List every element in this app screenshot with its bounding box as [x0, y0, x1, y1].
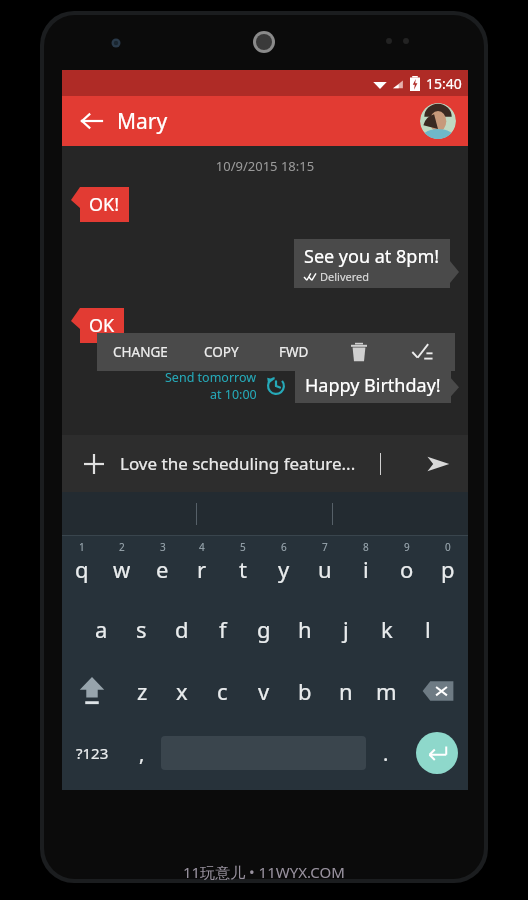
button[interactable]: 2 — [102, 536, 142, 598]
button[interactable]: Select all — [389, 333, 455, 371]
button[interactable]: ?123 — [62, 722, 122, 784]
staticText: z — [137, 676, 148, 706]
staticText: 5 — [240, 540, 246, 554]
button[interactable]: . — [366, 722, 405, 784]
button[interactable]: f — [202, 598, 243, 660]
button[interactable]: FWD — [258, 333, 329, 371]
staticText: 9 — [404, 540, 410, 554]
staticText: p — [441, 554, 455, 584]
button[interactable]: OK — [80, 308, 124, 343]
button[interactable]: Backspace — [407, 660, 468, 722]
button[interactable]: 7 — [304, 536, 345, 598]
staticText: h — [298, 614, 312, 644]
staticText: r — [197, 554, 207, 584]
button[interactable]: Happy Birthday! — [295, 368, 451, 403]
staticText: s — [136, 614, 147, 644]
staticText: 2 — [119, 540, 125, 554]
staticText: at 10:00 — [210, 386, 257, 403]
staticText: j — [343, 614, 349, 644]
button[interactable]: Scheduled — [264, 374, 288, 398]
button[interactable]: See you at 8pm! — [294, 239, 450, 288]
staticText: w — [113, 554, 131, 584]
button[interactable]: j — [325, 598, 366, 660]
button[interactable]: s — [121, 598, 161, 660]
staticText: 8 — [363, 540, 369, 554]
button[interactable]: Enter — [405, 722, 468, 784]
staticText: l — [425, 614, 431, 644]
staticText: COPY — [204, 343, 239, 361]
staticText: k — [381, 614, 393, 644]
button[interactable]: g — [243, 598, 284, 660]
staticText: 10/9/2015 18:15 — [62, 157, 468, 175]
staticText: i — [363, 554, 369, 584]
staticText: Love the scheduling feature... — [120, 452, 356, 475]
button[interactable]: Attach — [78, 448, 110, 480]
staticText: FWD — [279, 343, 309, 361]
staticText: e — [156, 554, 169, 584]
button[interactable]: a — [81, 598, 121, 660]
staticText: b — [298, 676, 312, 706]
staticText: ?123 — [76, 743, 109, 763]
button[interactable]: CHANGE — [97, 333, 184, 371]
staticText: o — [400, 554, 414, 584]
button[interactable]: Contact photo — [420, 103, 456, 139]
staticText: d — [175, 614, 189, 644]
button[interactable]: OK! — [80, 187, 129, 222]
staticText: f — [219, 614, 227, 644]
button[interactable]: n — [325, 660, 366, 722]
staticText: 6 — [281, 540, 287, 554]
button[interactable]: h — [284, 598, 325, 660]
staticText: 3 — [160, 540, 166, 554]
button[interactable]: 3 — [142, 536, 182, 598]
button[interactable]: k — [366, 598, 407, 660]
staticText: 15:40 — [426, 74, 462, 93]
button[interactable]: 9 — [386, 536, 427, 598]
button[interactable]: 4 — [182, 536, 222, 598]
button[interactable]: Back — [74, 103, 110, 139]
staticText: 0 — [445, 540, 451, 554]
staticText: x — [176, 676, 188, 706]
button[interactable]: c — [202, 660, 243, 722]
button[interactable]: l — [407, 598, 448, 660]
staticText: 11玩意儿 • 11WYX.COM — [183, 862, 345, 882]
staticText: Delivered — [320, 269, 369, 284]
button[interactable]: d — [161, 598, 202, 660]
staticText: u — [318, 554, 332, 584]
button[interactable]: m — [366, 660, 407, 722]
button[interactable]: Send — [420, 446, 456, 482]
staticText: See you at 8pm! — [304, 244, 440, 269]
staticText: , — [139, 740, 145, 767]
button[interactable]: 8 — [345, 536, 386, 598]
staticText: a — [95, 614, 108, 644]
button[interactable]: 0 — [427, 536, 468, 598]
staticText: Happy Birthday! — [305, 373, 441, 398]
staticText: n — [339, 676, 353, 706]
staticText: y — [278, 554, 290, 584]
button[interactable]: v — [243, 660, 284, 722]
staticText: 1 — [79, 540, 85, 554]
staticText: 4 — [199, 540, 205, 554]
button[interactable]: Shift — [62, 660, 122, 722]
staticText: g — [257, 614, 271, 644]
staticText: . — [383, 740, 389, 767]
staticText: OK — [89, 313, 115, 338]
button[interactable]: 1 — [62, 536, 102, 598]
button[interactable]: , — [122, 722, 161, 784]
staticText: t — [239, 554, 247, 584]
staticText: CHANGE — [113, 343, 168, 361]
button[interactable]: 6 — [263, 536, 304, 598]
button[interactable]: 5 — [222, 536, 263, 598]
button[interactable]: Delete — [329, 333, 389, 371]
staticText: v — [258, 676, 270, 706]
staticText: m — [376, 676, 397, 706]
staticText: OK! — [89, 192, 120, 217]
button[interactable]: COPY — [184, 333, 258, 371]
button[interactable]: b — [284, 660, 325, 722]
button[interactable]: z — [122, 660, 162, 722]
staticText: q — [75, 554, 89, 584]
button[interactable]: x — [162, 660, 202, 722]
